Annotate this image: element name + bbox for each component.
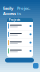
button[interactable] bbox=[7, 47, 33, 55]
button[interactable]: Add bbox=[33, 63, 38, 68]
staticText: Projects bbox=[17, 5, 30, 16]
button[interactable] bbox=[7, 39, 33, 47]
button[interactable] bbox=[7, 22, 33, 30]
button[interactable] bbox=[7, 30, 33, 38]
staticText: Projects bbox=[9, 18, 20, 22]
staticText: Easily Access bbox=[3, 5, 16, 16]
